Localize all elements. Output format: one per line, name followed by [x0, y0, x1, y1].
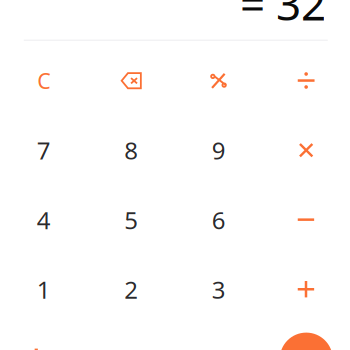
button[interactable]: Multiply: [262, 115, 350, 185]
button[interactable]: 7: [0, 115, 87, 185]
button[interactable]: 8: [87, 115, 175, 185]
staticText: 1: [37, 274, 51, 305]
button[interactable]: Divide: [262, 46, 350, 115]
button[interactable]: 3: [175, 255, 262, 324]
staticText: C: [37, 66, 50, 95]
staticText: 7: [37, 134, 51, 166]
staticText: 5: [124, 204, 138, 236]
button[interactable]: Toggle sign: [0, 324, 87, 350]
staticText: = 32: [240, 0, 326, 33]
staticText: 6: [212, 204, 226, 236]
button[interactable]: Plus: [262, 255, 350, 324]
staticText: 2: [124, 274, 138, 305]
button[interactable]: 4: [0, 185, 87, 255]
staticText: 8: [124, 134, 138, 166]
button[interactable]: 6: [175, 185, 262, 255]
button[interactable]: 9: [175, 115, 262, 185]
button[interactable]: Percent: [175, 46, 262, 115]
button[interactable]: Minus: [262, 185, 350, 255]
button[interactable]: Clear: [0, 46, 87, 115]
staticText: 4: [37, 204, 51, 236]
button[interactable]: Equals: [262, 324, 350, 350]
button[interactable]: 5: [87, 185, 175, 255]
staticText: 3: [212, 274, 226, 305]
button[interactable]: 1: [0, 255, 87, 324]
button[interactable]: 2: [87, 255, 175, 324]
button[interactable]: Delete: [87, 46, 175, 115]
staticText: 9: [212, 134, 226, 166]
